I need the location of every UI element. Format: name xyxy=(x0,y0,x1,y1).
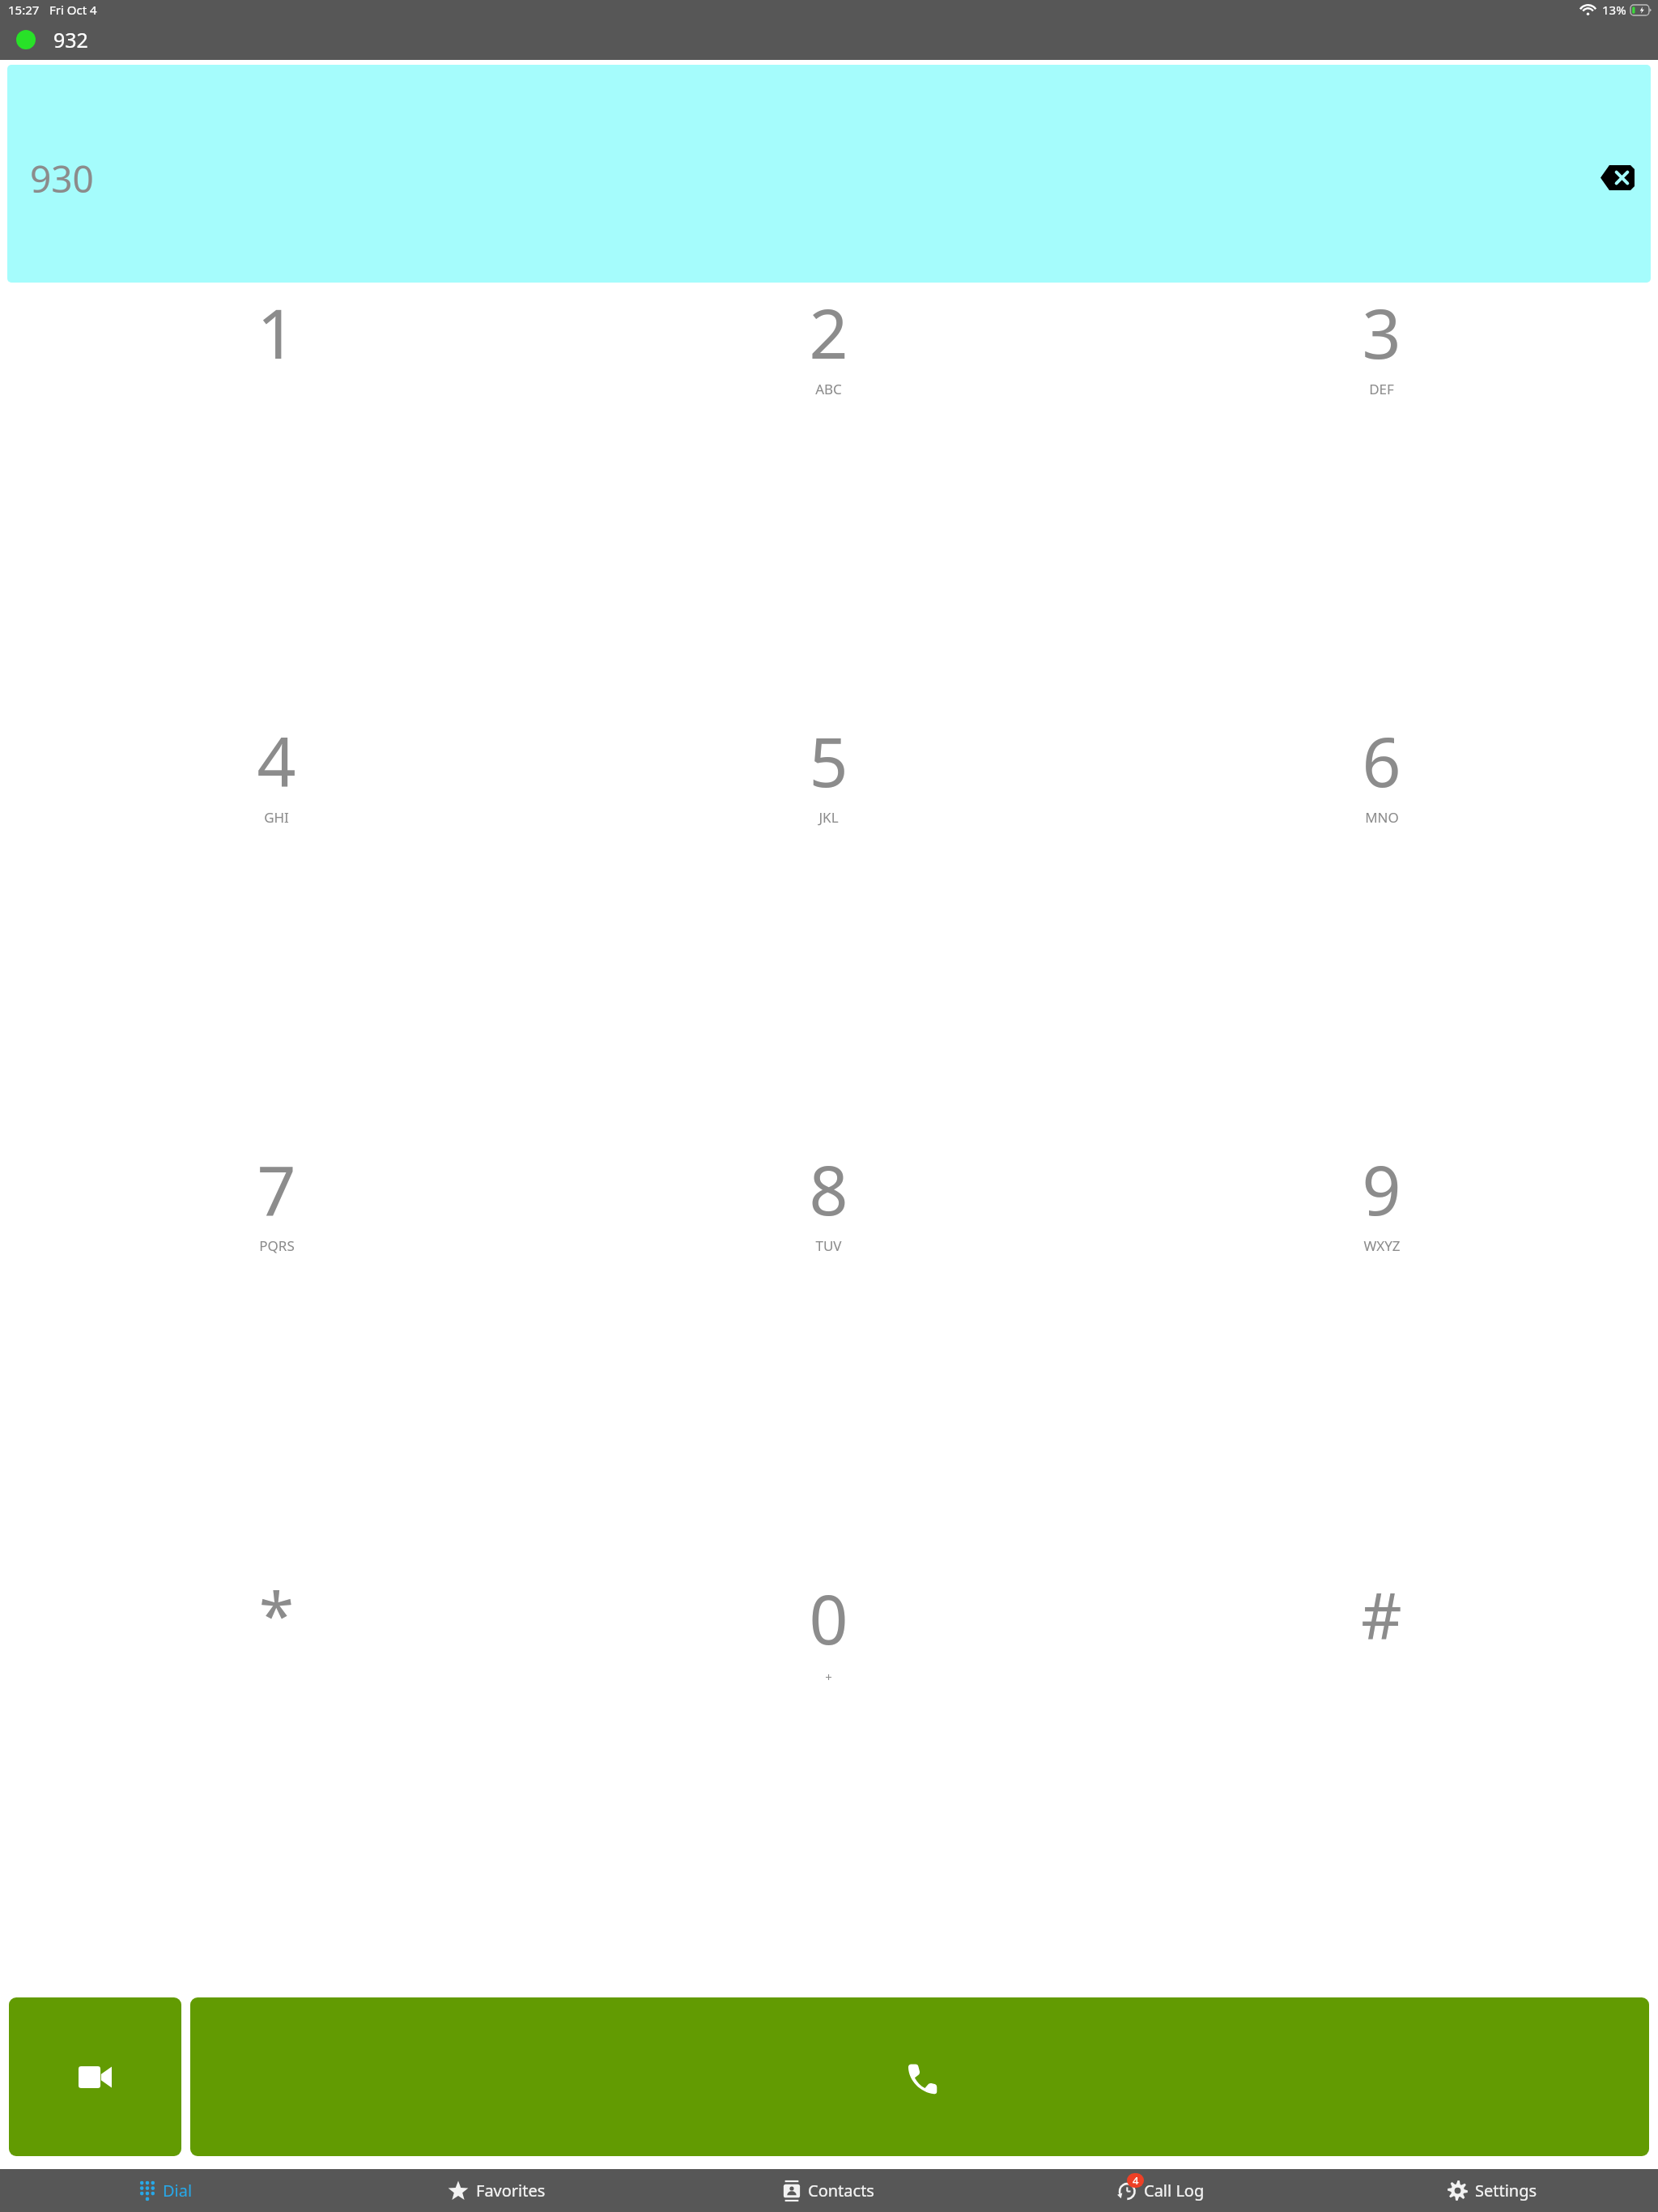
button[interactable]: 9 xyxy=(1105,1139,1658,1568)
staticText: PQRS xyxy=(259,1236,295,1255)
staticText: 8 xyxy=(809,1142,848,1235)
button[interactable]: * xyxy=(0,1568,552,1997)
staticText: 3 xyxy=(1362,286,1401,378)
button[interactable]: Backspace xyxy=(1599,164,1636,191)
staticText: 4 xyxy=(257,714,296,806)
button[interactable]: 0 xyxy=(552,1568,1105,1997)
staticText: Dial xyxy=(163,2180,193,2201)
button[interactable]: 2 xyxy=(552,283,1105,711)
staticText: 5 xyxy=(809,714,848,806)
staticText: 930 xyxy=(30,153,94,204)
button[interactable]: Settings xyxy=(1448,2169,1537,2212)
button[interactable]: 1 xyxy=(0,283,552,711)
button[interactable]: Contacts xyxy=(783,2169,874,2212)
staticText: # xyxy=(1361,1572,1402,1657)
button[interactable]: 8 xyxy=(552,1139,1105,1568)
staticText: 0 xyxy=(809,1572,848,1664)
staticText: 932 xyxy=(53,26,88,53)
button[interactable]: 5 xyxy=(552,711,1105,1139)
staticText: Settings xyxy=(1475,2180,1537,2201)
button[interactable]: 930 xyxy=(7,65,1651,283)
button[interactable]: 7 xyxy=(0,1139,552,1568)
staticText: Favorites xyxy=(476,2180,546,2201)
button[interactable]: Dial xyxy=(139,2169,193,2212)
staticText: GHI xyxy=(264,808,289,827)
button[interactable]: 4 xyxy=(1116,2169,1205,2212)
button[interactable]: Video call xyxy=(9,1997,181,2156)
button[interactable]: 3 xyxy=(1105,283,1658,711)
staticText: Call Log xyxy=(1144,2180,1205,2201)
staticText: ABC xyxy=(815,380,842,398)
staticText: 13% xyxy=(1602,2,1626,18)
staticText: 9 xyxy=(1362,1142,1401,1235)
staticText: * xyxy=(259,1572,294,1657)
staticText: 2 xyxy=(809,286,848,378)
button[interactable]: # xyxy=(1105,1568,1658,1997)
staticText: TUV xyxy=(815,1236,842,1255)
button[interactable]: Call xyxy=(190,1997,1649,2156)
staticText: WXYZ xyxy=(1363,1236,1401,1255)
button[interactable]: 6 xyxy=(1105,711,1658,1139)
staticText: JKL xyxy=(818,808,839,827)
staticText: Contacts xyxy=(808,2180,874,2201)
staticText: Fri Oct 4 xyxy=(49,2,97,18)
staticText: MNO xyxy=(1365,808,1399,827)
staticText: DEF xyxy=(1369,380,1394,398)
staticText: 1 xyxy=(257,286,296,378)
staticText: 4 xyxy=(1133,2173,1139,2188)
staticText: 15:27 xyxy=(8,2,40,18)
button[interactable]: Favorites xyxy=(448,2169,546,2212)
staticText: 7 xyxy=(257,1142,296,1235)
button[interactable]: 4 xyxy=(0,711,552,1139)
staticText: 6 xyxy=(1362,714,1401,806)
staticText: + xyxy=(825,1669,832,1685)
